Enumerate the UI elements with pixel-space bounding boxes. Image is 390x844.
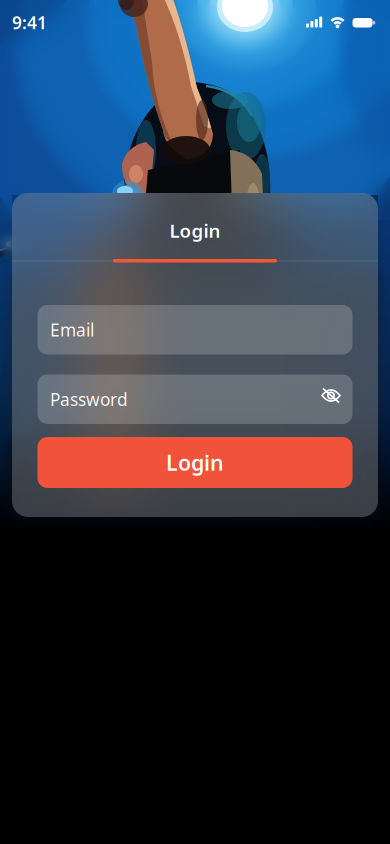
button[interactable]: Password (37, 374, 352, 424)
button[interactable]: Login tab (113, 259, 277, 262)
staticText: Login (169, 218, 220, 243)
staticText: 9:41 (12, 11, 47, 34)
button[interactable]: Email (37, 305, 352, 354)
staticText: Login (166, 448, 224, 477)
staticText: Password (50, 388, 128, 411)
button[interactable]: Show password (312, 377, 350, 415)
button[interactable]: Login (37, 437, 352, 488)
staticText: Email (50, 318, 94, 341)
